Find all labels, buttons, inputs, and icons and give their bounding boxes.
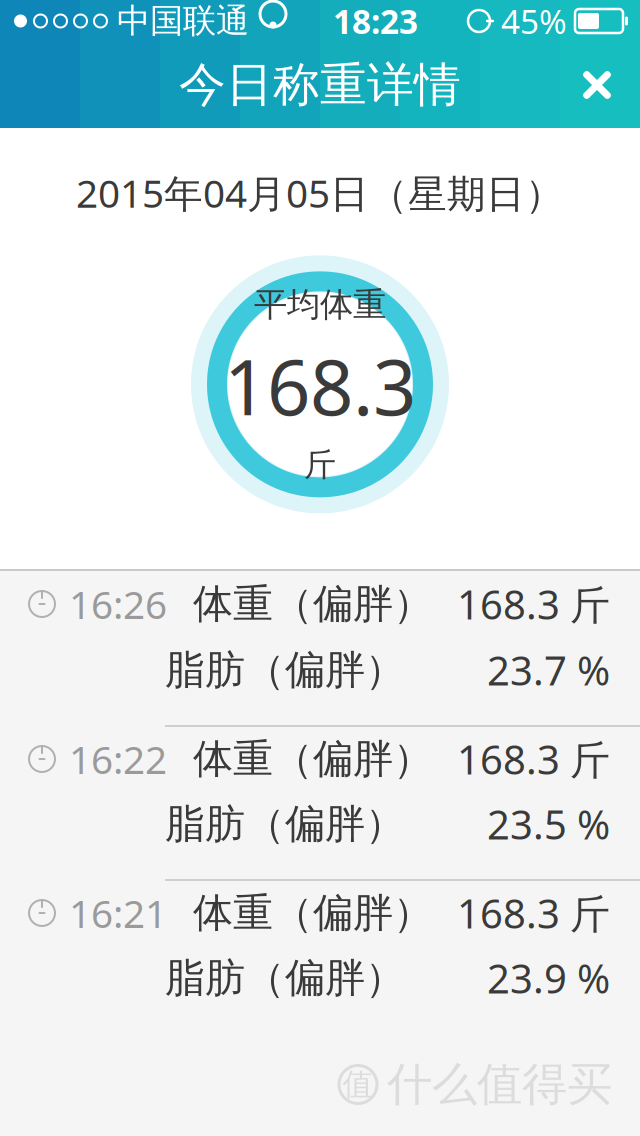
staticText: 什么值得买 (387, 1057, 612, 1112)
staticText: 18:23 (333, 0, 418, 43)
button[interactable]: 16:22 (0, 725, 640, 879)
staticText: 16:22 (69, 733, 167, 785)
staticText: 45% (501, 0, 567, 43)
staticText: 体重（偏胖） (193, 734, 433, 783)
staticText: 值 (342, 1066, 373, 1103)
staticText: 16:21 (69, 887, 167, 939)
staticText: 168.3 (224, 335, 416, 436)
staticText: 23.5 % (487, 797, 610, 850)
staticText: 2015年04月05日（星期日） (76, 167, 564, 218)
staticText: 168.3 斤 (457, 886, 610, 939)
staticText: 中国联通 (117, 0, 249, 41)
staticText: 今日称重详情 (179, 56, 461, 114)
button[interactable]: 关闭 (554, 42, 640, 128)
staticText: 脂肪（偏胖） (165, 799, 405, 848)
staticText: 体重（偏胖） (193, 579, 433, 628)
staticText: 斤 (304, 445, 336, 484)
staticText: 23.9 % (487, 951, 610, 1004)
staticText: 168.3 斤 (457, 577, 610, 630)
staticText: 脂肪（偏胖） (165, 645, 405, 694)
staticText: 体重（偏胖） (193, 888, 433, 937)
button[interactable]: 16:21 (0, 879, 640, 1033)
staticText: 16:26 (69, 578, 167, 630)
staticText: 168.3 斤 (457, 732, 610, 785)
staticText: 23.7 % (487, 643, 610, 696)
staticText: 脂肪（偏胖） (165, 953, 405, 1002)
button[interactable]: 16:26 (0, 571, 640, 725)
staticText: 平均体重 (254, 284, 386, 325)
